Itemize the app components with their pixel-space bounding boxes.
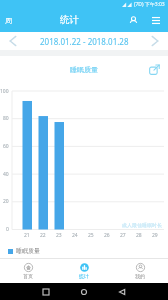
staticText: 统计 [79, 273, 89, 279]
staticText: 23 [56, 232, 62, 239]
staticText: 27 [120, 232, 126, 239]
staticText: 21 [24, 232, 30, 239]
staticText: 睡眠质量 [16, 247, 40, 255]
button[interactable]: Menu [144, 9, 168, 31]
staticText: 睡眠质量 [70, 65, 98, 74]
staticText: 20 [3, 198, 9, 205]
button[interactable]: 首页 [0, 259, 56, 283]
button[interactable]: Next [142, 32, 168, 50]
staticText: 100 [0, 88, 9, 95]
button[interactable]: Home [77, 285, 91, 299]
staticText: 40 [3, 171, 9, 178]
staticText: 26 [104, 232, 110, 239]
staticText: 25 [88, 232, 94, 239]
staticText: 周 [5, 16, 12, 25]
button[interactable]: 我的 [112, 259, 168, 283]
staticText: 0 [6, 226, 9, 233]
staticText: 60 [3, 143, 9, 150]
button[interactable]: Previous [0, 32, 26, 50]
button[interactable]: Recents [39, 285, 53, 299]
staticText: 我的 [135, 273, 145, 279]
button[interactable]: Back [115, 285, 129, 299]
staticText: 成人最佳睡眠时长 [122, 222, 162, 228]
staticText: 统计 [60, 14, 79, 26]
button[interactable]: Account [122, 9, 144, 31]
staticText: 29 [152, 232, 158, 239]
staticText: 28 [136, 232, 142, 239]
staticText: 22 [40, 232, 46, 239]
staticText: (7D) 下午3:03 [134, 1, 165, 8]
staticText: 首页 [23, 273, 33, 279]
button[interactable]: 统计 [56, 259, 112, 283]
button[interactable]: 周 [0, 9, 17, 31]
staticText: 2018.01.22 - 2018.01.28 [40, 36, 129, 47]
button[interactable]: Share [145, 60, 163, 78]
staticText: 24 [72, 232, 78, 239]
staticText: 80 [3, 115, 9, 122]
